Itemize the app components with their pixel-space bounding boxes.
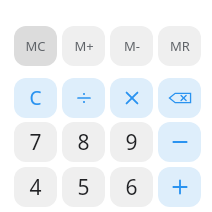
button[interactable]: 7 (14, 122, 57, 162)
staticText: 9 (125, 128, 138, 157)
staticText: 6 (125, 173, 138, 202)
button[interactable]: MC (14, 26, 57, 66)
button[interactable]: M+ (62, 26, 105, 66)
staticText: 4 (29, 173, 42, 202)
button[interactable]: Divide (62, 78, 105, 118)
staticText: MC (25, 37, 46, 55)
staticText: M+ (74, 37, 94, 55)
button[interactable]: Plus (158, 167, 201, 207)
button[interactable]: 8 (62, 122, 105, 162)
staticText: MR (170, 37, 190, 55)
staticText: C (29, 85, 42, 111)
staticText: M- (124, 37, 140, 55)
button[interactable]: C (14, 78, 57, 118)
button[interactable]: MR (158, 26, 201, 66)
button[interactable]: 5 (62, 167, 105, 207)
button[interactable]: Multiply (110, 78, 153, 118)
button[interactable]: Backspace (158, 78, 201, 118)
button[interactable]: M- (110, 26, 153, 66)
button[interactable]: 4 (14, 167, 57, 207)
button[interactable]: 9 (110, 122, 153, 162)
staticText: 5 (77, 173, 90, 202)
staticText: 8 (77, 128, 90, 157)
staticText: 7 (29, 128, 42, 157)
button[interactable]: 6 (110, 167, 153, 207)
button[interactable]: Minus (158, 122, 201, 162)
